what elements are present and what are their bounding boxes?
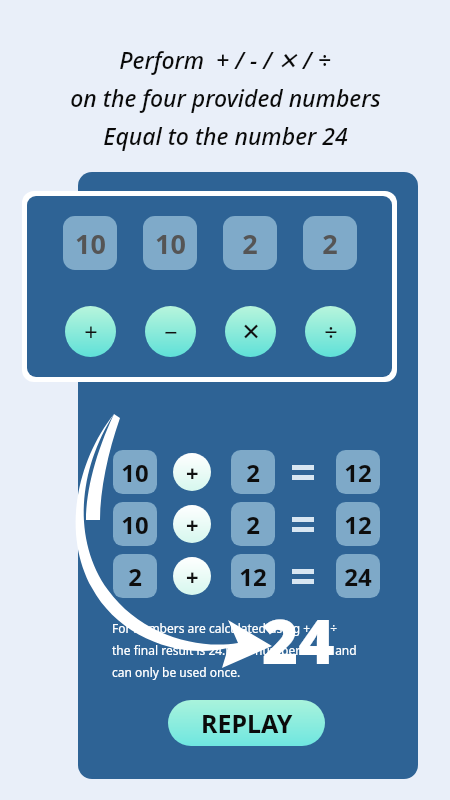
button[interactable]: 2 — [231, 502, 275, 546]
staticText: Perform + / - / ✕ / ÷ — [119, 44, 331, 75]
staticText: 12 — [344, 508, 372, 541]
button[interactable]: 10 — [63, 216, 117, 270]
staticText: ÷ — [324, 316, 338, 348]
staticText: REPLAY — [201, 706, 293, 740]
staticText: can only be used once. — [112, 664, 241, 680]
button[interactable]: Multiply — [225, 306, 276, 357]
staticText: 2 — [128, 560, 142, 593]
staticText: + — [186, 561, 199, 591]
staticText: For numbers are calculated using + - × ÷ — [112, 620, 338, 636]
button[interactable]: Add — [65, 306, 116, 357]
button[interactable]: 2 — [223, 216, 277, 270]
staticText: 2 — [246, 508, 260, 541]
staticText: + — [186, 509, 199, 539]
staticText: 10 — [121, 508, 149, 541]
button[interactable]: 2 — [231, 450, 275, 494]
staticText: 24 — [262, 598, 335, 682]
staticText: the final result is 24.Each number must … — [112, 642, 357, 658]
staticText: 2 — [322, 225, 338, 262]
button[interactable]: 12 — [336, 502, 380, 546]
staticText: 2 — [246, 456, 260, 489]
staticText: 12 — [344, 456, 372, 489]
staticText: 10 — [121, 456, 149, 489]
button[interactable]: 24 — [336, 554, 380, 598]
button[interactable]: 12 — [336, 450, 380, 494]
staticText: + — [186, 457, 199, 487]
button[interactable]: REPLAY — [168, 700, 325, 746]
staticText: 12 — [239, 560, 267, 593]
button[interactable]: Subtract — [145, 306, 196, 357]
button[interactable]: 2 — [113, 554, 157, 598]
button[interactable]: 10 — [143, 216, 197, 270]
staticText: 10 — [75, 225, 106, 262]
button[interactable]: 2 — [303, 216, 357, 270]
button[interactable]: 12 — [231, 554, 275, 598]
staticText: 10 — [155, 225, 186, 262]
staticText: − — [164, 316, 178, 348]
staticText: + — [84, 316, 98, 348]
staticText: Equal to the number 24 — [103, 120, 348, 151]
staticText: 2 — [242, 225, 258, 262]
staticText: on the four provided numbers — [70, 82, 381, 113]
button[interactable]: 10 — [113, 450, 157, 494]
button[interactable]: Divide — [305, 306, 356, 357]
button[interactable]: 10 — [113, 502, 157, 546]
staticText: 24 — [344, 560, 372, 593]
staticText: ✕ — [241, 318, 261, 345]
